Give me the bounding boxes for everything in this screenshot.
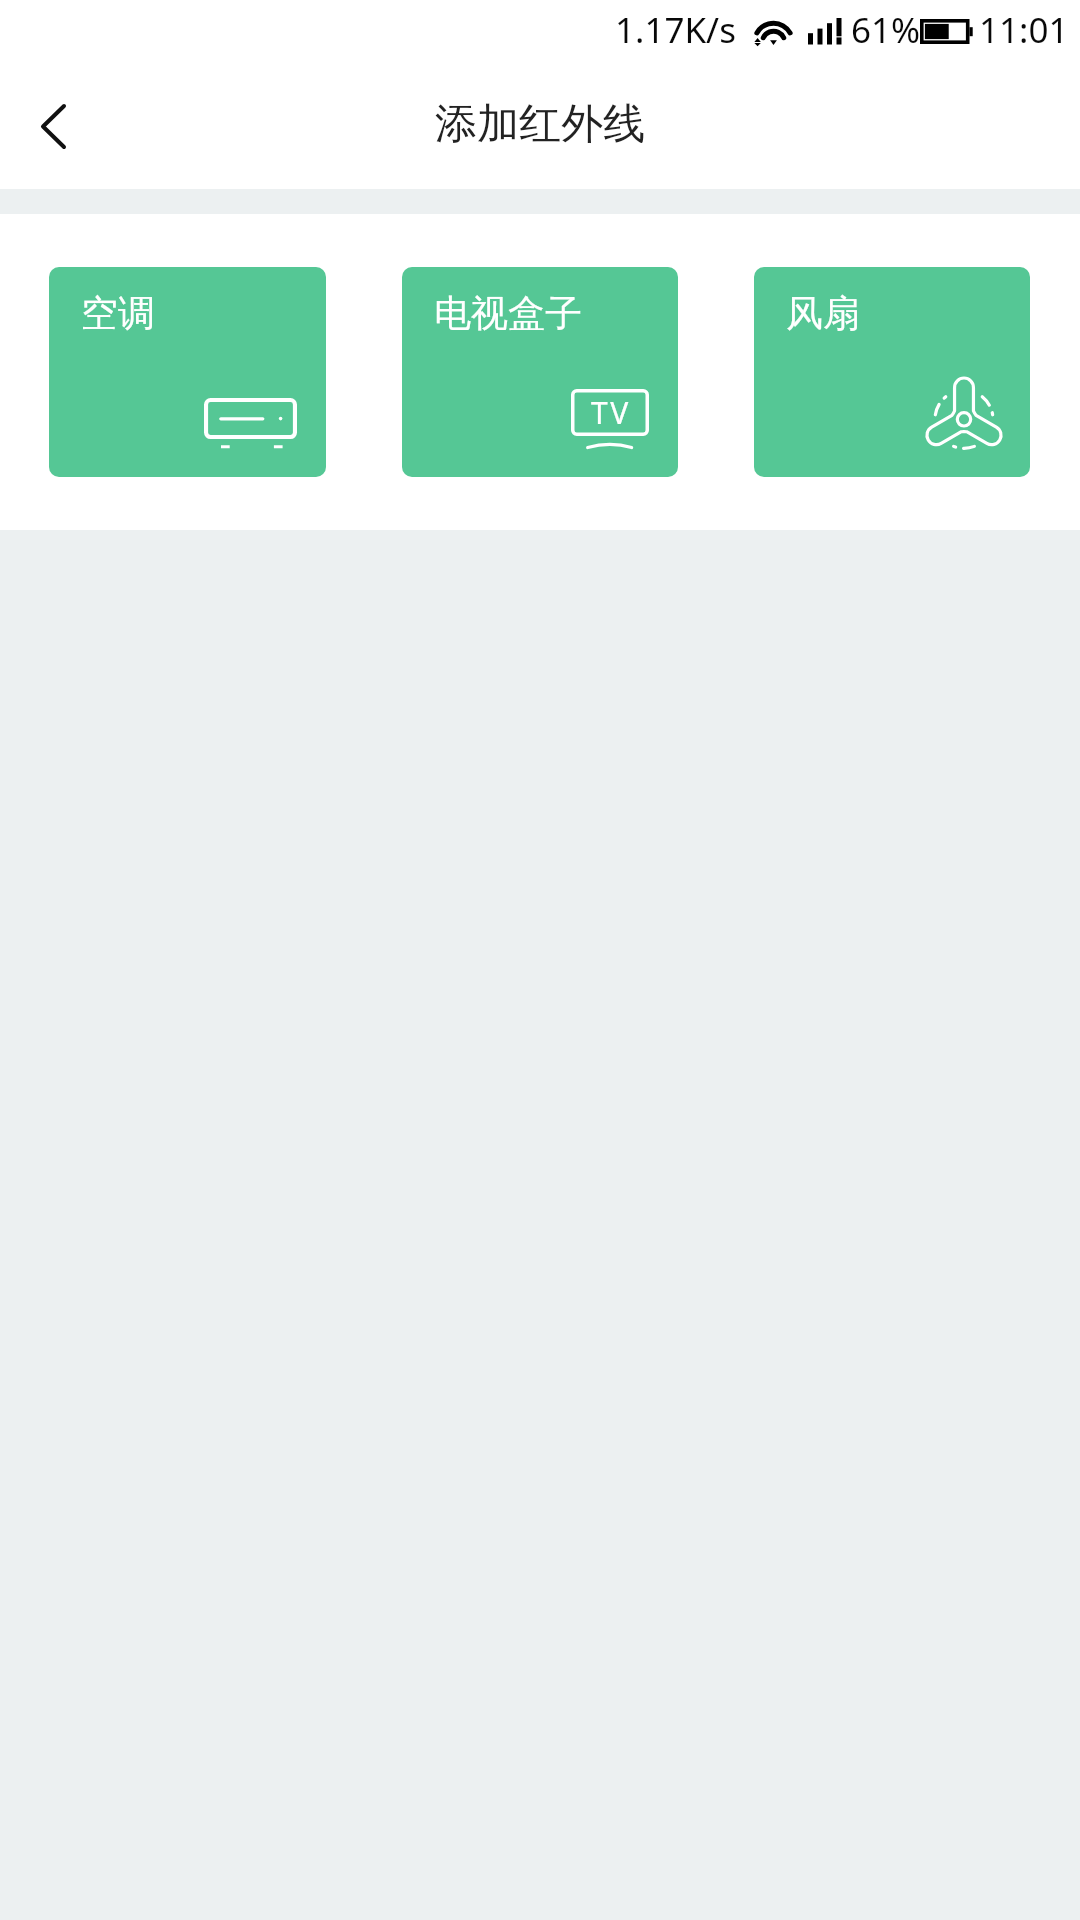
staticText: 11:01 <box>979 6 1069 54</box>
staticText: 风扇 <box>786 290 860 337</box>
button[interactable]: 风扇 <box>754 267 1030 477</box>
staticText: 1.17K/s <box>615 6 736 54</box>
staticText: 61% <box>851 6 921 54</box>
button[interactable]: 空调 <box>49 267 326 477</box>
staticText: 添加红外线 <box>435 98 645 151</box>
button[interactable]: Back <box>7 71 99 181</box>
button[interactable]: 电视盒子 <box>402 267 678 477</box>
staticText: 电视盒子 <box>434 290 582 337</box>
staticText: TV <box>591 392 631 433</box>
staticText: 空调 <box>81 290 155 337</box>
